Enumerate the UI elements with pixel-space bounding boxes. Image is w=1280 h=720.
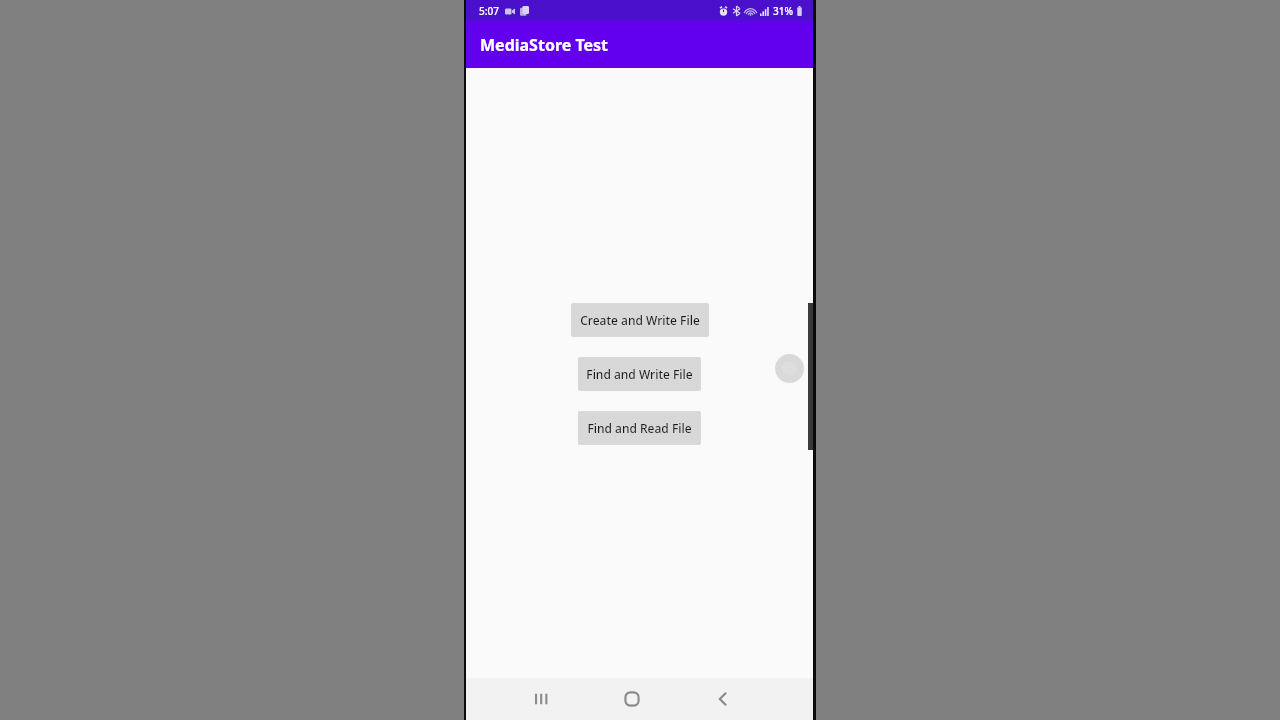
button[interactable]: Create and Write File — [571, 303, 709, 337]
staticText: Find and Read File — [587, 420, 692, 436]
staticText: Find and Write File — [586, 366, 693, 382]
button[interactable]: Assistant bubble — [775, 354, 804, 383]
button[interactable]: Recent apps — [518, 678, 564, 720]
button[interactable]: Find and Read File — [578, 411, 701, 445]
staticText: 5:07 — [479, 4, 499, 18]
staticText: Create and Write File — [580, 312, 700, 328]
staticText: MediaStore Test — [480, 34, 609, 56]
staticText: 31% — [773, 4, 793, 18]
button[interactable]: Home — [609, 678, 655, 720]
button[interactable]: Find and Write File — [578, 357, 701, 391]
button[interactable]: Back — [700, 678, 746, 720]
